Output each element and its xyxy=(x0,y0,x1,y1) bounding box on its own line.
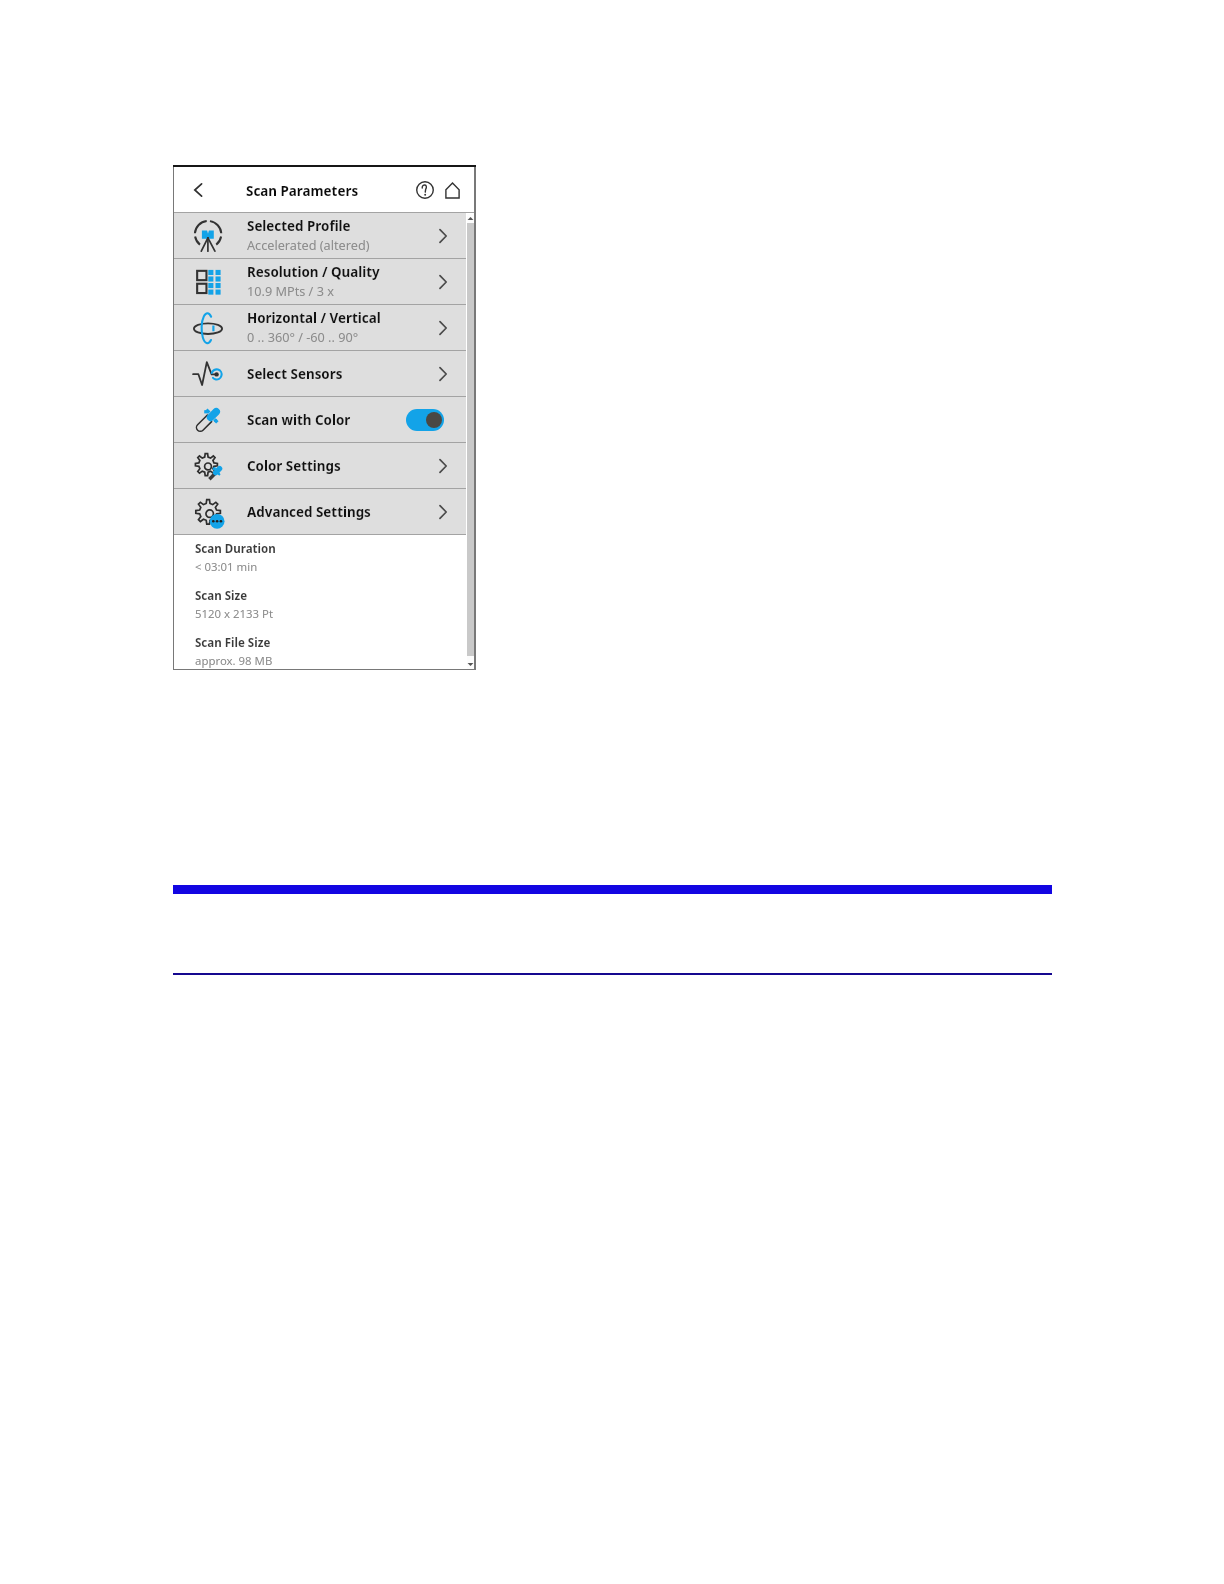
staticText: Scan Parameters xyxy=(246,182,359,200)
staticText: 0 .. 360° / -60 .. 90° xyxy=(247,328,359,345)
staticText: Horizontal / Vertical xyxy=(247,309,381,327)
button[interactable]: Help xyxy=(413,178,437,202)
button[interactable]: Select Sensors xyxy=(174,351,466,396)
staticText: Select Sensors xyxy=(247,365,343,383)
staticText: Color Settings xyxy=(247,457,341,475)
button[interactable]: Resolution / Quality xyxy=(174,259,466,304)
button[interactable]: Home xyxy=(440,178,464,202)
button[interactable]: Back xyxy=(185,177,211,203)
staticText: 10.9 MPts / 3 x xyxy=(247,282,334,299)
staticText: Scan Duration xyxy=(195,541,276,557)
button[interactable]: Advanced Settings xyxy=(174,489,466,534)
staticText: Scan Size xyxy=(195,588,248,604)
button[interactable]: Selected Profile xyxy=(174,213,466,258)
staticText: approx. 98 MB xyxy=(195,653,273,669)
button[interactable]: Color Settings xyxy=(174,443,466,488)
staticText: Resolution / Quality xyxy=(247,263,380,281)
staticText: Scan with Color xyxy=(247,411,406,429)
staticText: 5120 x 2133 Pt xyxy=(195,606,274,622)
button[interactable]: Scan with Color xyxy=(174,397,466,442)
button[interactable]: Horizontal / Vertical xyxy=(174,305,466,350)
staticText: Advanced Settings xyxy=(247,503,371,521)
staticText: Scan File Size xyxy=(195,635,271,651)
button[interactable]: Scan with Color toggle xyxy=(406,409,444,431)
staticText: Accelerated (altered) xyxy=(247,236,370,253)
staticText: < 03:01 min xyxy=(195,559,258,575)
staticText: Selected Profile xyxy=(247,217,351,235)
button[interactable]: Scroll xyxy=(467,214,474,669)
